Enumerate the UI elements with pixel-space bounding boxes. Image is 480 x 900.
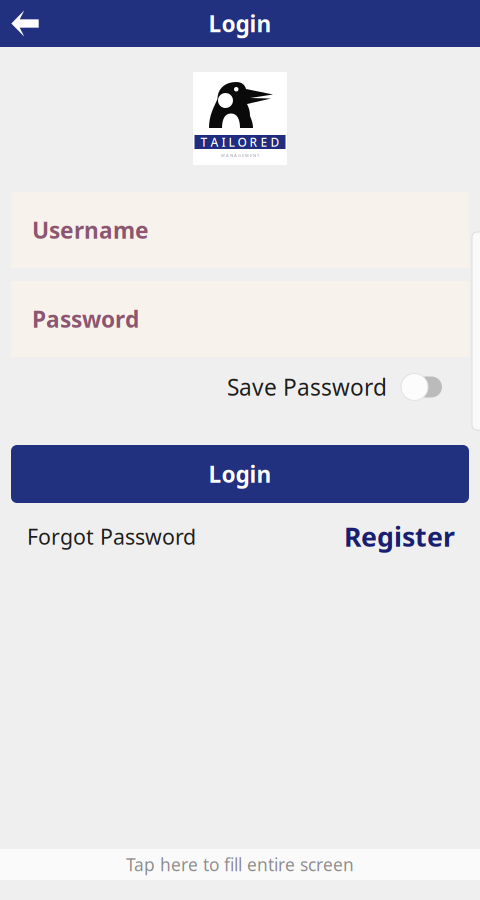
button[interactable]: Tap here to fill entire screen [0, 849, 480, 880]
staticText: M A N A G E M E N T [221, 153, 259, 158]
staticText: Forgot Password [27, 522, 196, 551]
staticText: Login [208, 8, 271, 38]
staticText: Tap here to fill entire screen [126, 853, 354, 876]
button[interactable]: Login [11, 445, 469, 503]
button[interactable]: Username [11, 192, 469, 268]
staticText: Password [32, 304, 139, 334]
staticText: Save Password [227, 372, 387, 402]
button[interactable]: Register [344, 519, 455, 553]
button[interactable]: Back [0, 0, 50, 47]
staticText: Register [344, 519, 455, 554]
staticText: T A I L O R E D [200, 134, 279, 150]
button[interactable]: Forgot Password [27, 521, 196, 551]
staticText: Login [208, 459, 271, 489]
button[interactable]: Save Password [0, 357, 480, 417]
button[interactable]: Password [11, 281, 469, 357]
staticText: Username [32, 215, 149, 245]
